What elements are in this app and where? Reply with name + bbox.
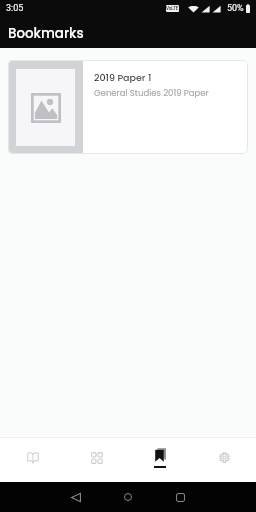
button[interactable]: Library	[6, 437, 62, 482]
button[interactable]: Settings	[194, 437, 250, 482]
staticText: 3:05	[6, 3, 24, 14]
staticText: VoLTE	[166, 6, 179, 11]
button[interactable]: Dashboard	[69, 437, 125, 482]
button[interactable]: Bookmarks	[131, 437, 187, 482]
button[interactable]: 2019 Paper 1	[8, 60, 248, 154]
staticText: 2019 Paper 1	[94, 71, 152, 84]
staticText: 50%	[227, 3, 244, 14]
staticText: Bookmarks	[8, 24, 84, 43]
staticText: General Studies 2019 Paper	[94, 87, 209, 99]
